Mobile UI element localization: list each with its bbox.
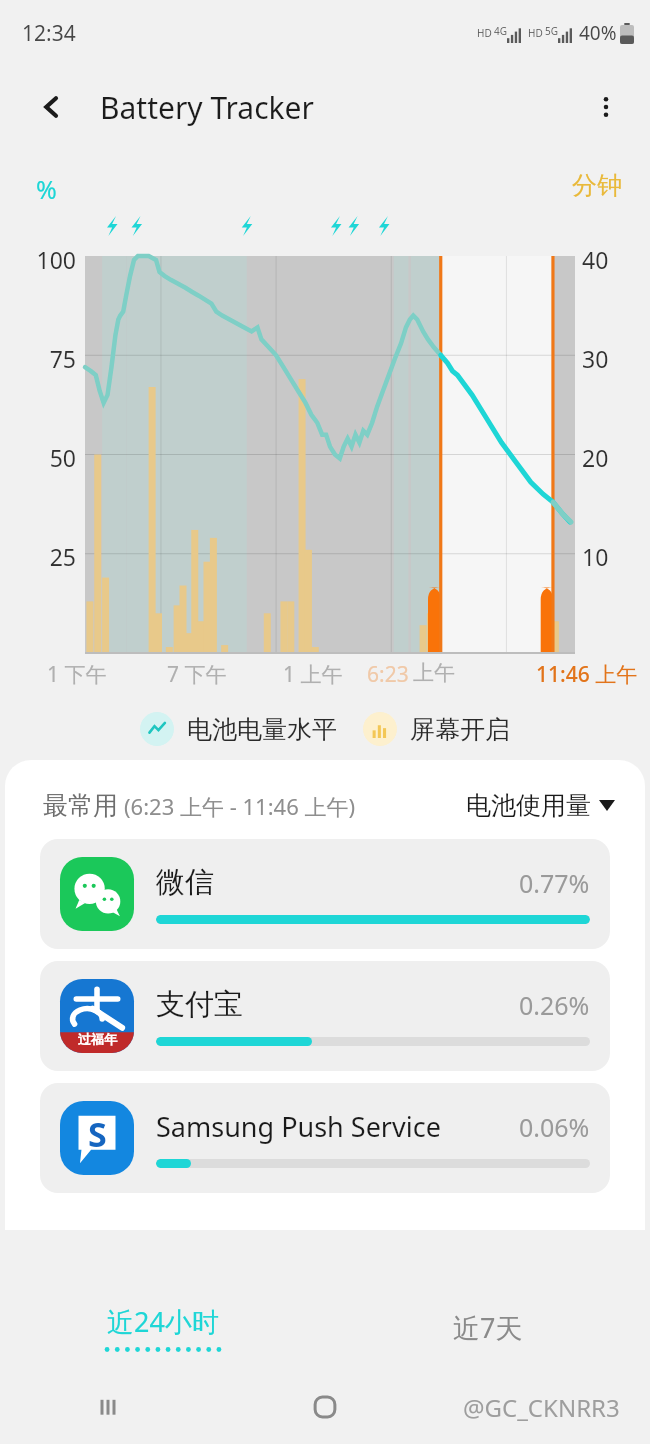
- staticText: 屏幕开启: [410, 714, 510, 745]
- staticText: 过福年: [78, 1031, 117, 1047]
- staticText: 7 下午: [167, 660, 227, 689]
- staticText: 1 下午: [47, 660, 107, 689]
- staticText: 12:34: [22, 19, 76, 48]
- staticText: %: [36, 172, 57, 206]
- staticText: 电池电量水平: [187, 714, 337, 745]
- staticText: 40%: [579, 20, 617, 46]
- staticText: 50: [0, 442, 76, 473]
- staticText: 支付宝: [156, 986, 243, 1023]
- staticText: 20: [582, 442, 632, 473]
- staticText: 微信: [156, 864, 214, 901]
- button[interactable]: Home: [216, 1370, 433, 1444]
- staticText: 1 上午: [283, 660, 343, 689]
- staticText: 近24小时: [107, 1303, 219, 1340]
- staticText: 0.77%: [519, 866, 590, 900]
- staticText: 近7天: [453, 1309, 523, 1346]
- button[interactable]: 近24小时: [0, 1284, 325, 1370]
- staticText: 10: [582, 541, 632, 572]
- staticText: 最常用: [43, 790, 118, 821]
- button[interactable]: Back: [30, 85, 74, 129]
- button[interactable]: 近7天: [325, 1284, 650, 1370]
- staticText: 100: [0, 244, 76, 275]
- staticText: 25: [0, 541, 76, 572]
- staticText: @GC_CKNRR3: [463, 1391, 620, 1424]
- staticText: HD: [477, 26, 492, 40]
- button[interactable]: 微信: [40, 839, 610, 949]
- staticText: 5G: [545, 24, 558, 38]
- staticText: 分钟: [572, 170, 622, 201]
- staticText: 电池使用量: [466, 790, 591, 821]
- staticText: 上午: [413, 660, 455, 686]
- button[interactable]: S: [40, 1083, 610, 1193]
- staticText: Samsung Push Service: [156, 1108, 441, 1145]
- staticText: 40: [582, 244, 632, 275]
- staticText: 6:23: [367, 660, 409, 689]
- button[interactable]: 过福年: [40, 961, 610, 1071]
- button[interactable]: Recents: [0, 1370, 216, 1444]
- staticText: 11:46 上午: [536, 660, 638, 689]
- staticText: 0.26%: [519, 988, 590, 1022]
- button[interactable]: More options: [584, 85, 628, 129]
- button[interactable]: Back: [433, 1370, 650, 1444]
- button[interactable]: 电池使用量: [466, 790, 615, 821]
- staticText: 4G: [494, 24, 507, 38]
- staticText: 75: [0, 343, 76, 374]
- staticText: Battery Tracker: [100, 87, 314, 128]
- staticText: S: [88, 1111, 107, 1157]
- staticText: HD: [528, 26, 543, 40]
- staticText: 0.06%: [519, 1110, 590, 1144]
- staticText: 30: [582, 343, 632, 374]
- staticText: (6:23 上午 - 11:46 上午): [124, 791, 356, 821]
